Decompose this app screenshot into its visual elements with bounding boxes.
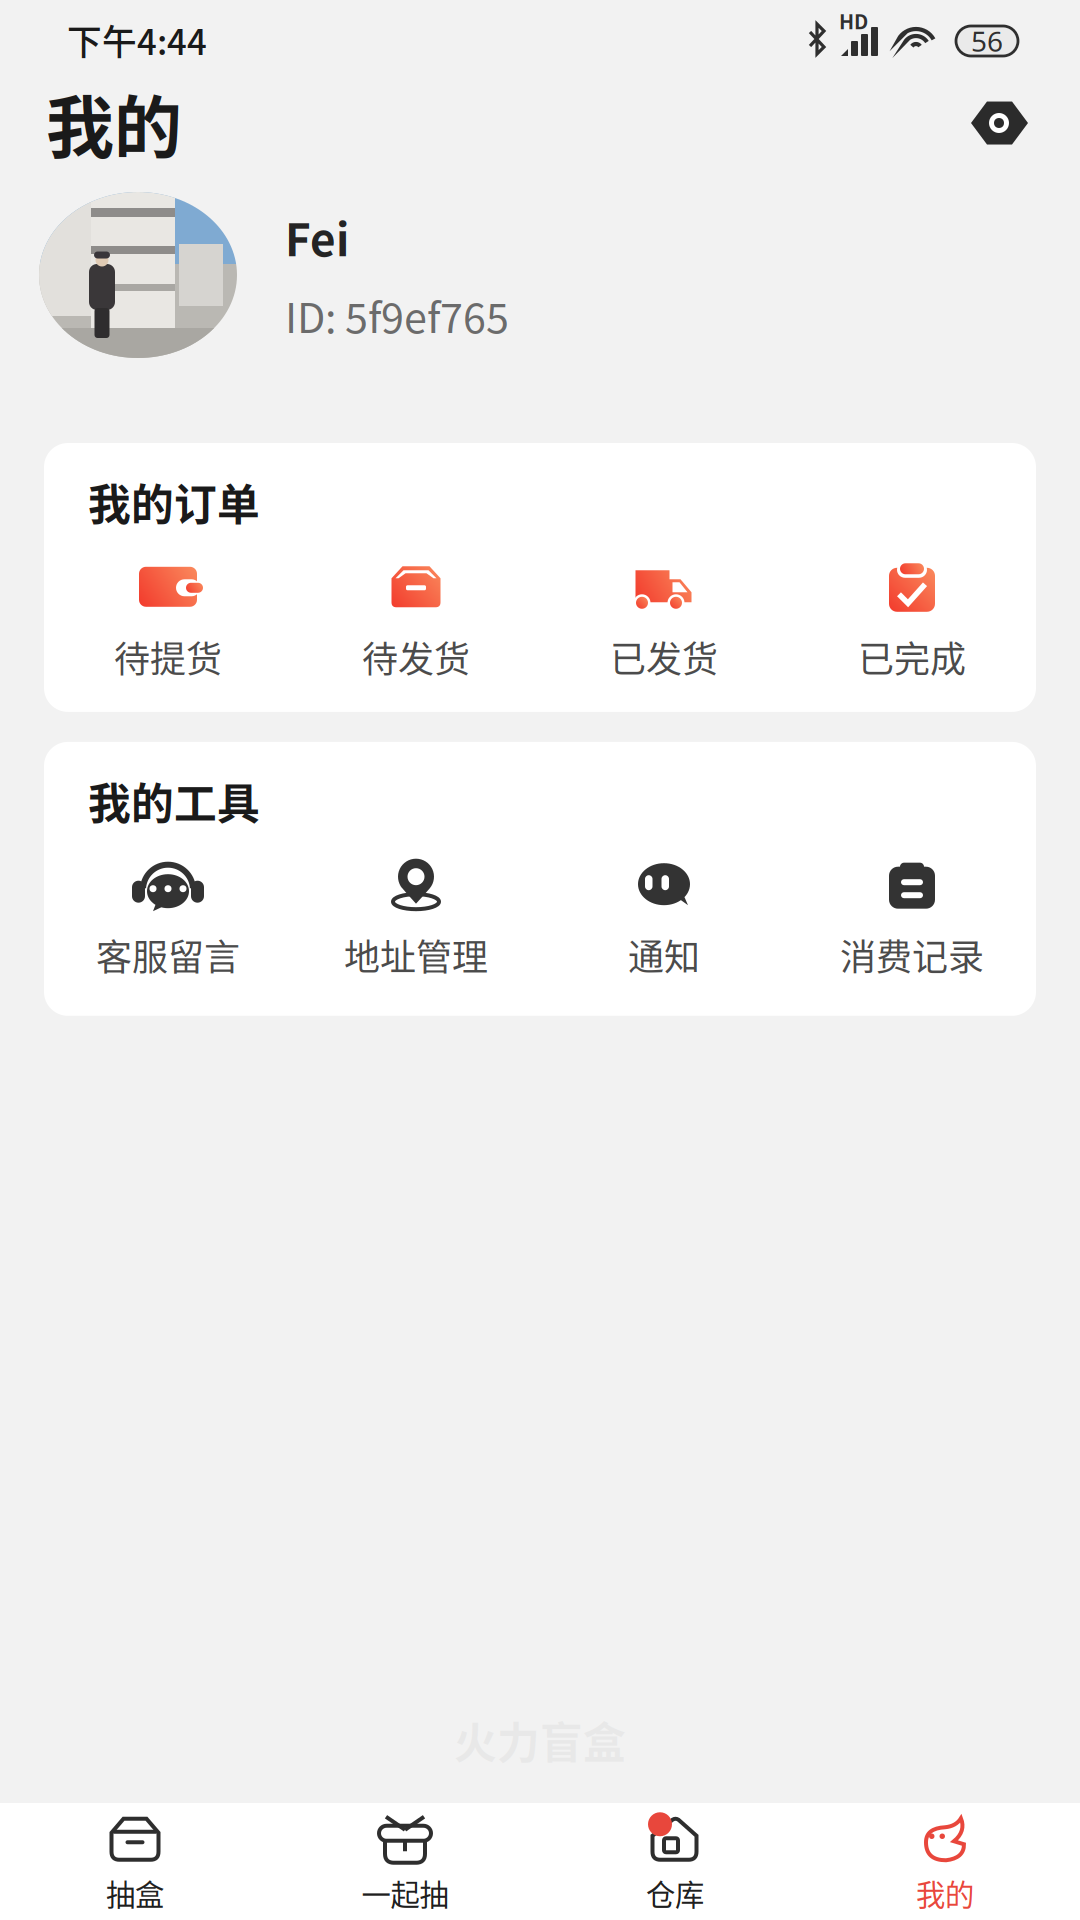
button[interactable]: 仓库 xyxy=(540,1791,810,1920)
staticText: 仓库 xyxy=(646,1872,704,1914)
button[interactable]: 地址管理 xyxy=(292,859,540,981)
button[interactable]: 消费记录 xyxy=(788,859,1036,981)
staticText: 已完成 xyxy=(858,631,966,683)
staticText: 火力盲盒 xyxy=(454,1709,626,1771)
staticText: ID: 5f9ef765 xyxy=(285,285,509,345)
staticText: HD xyxy=(839,6,868,35)
staticText: 通知 xyxy=(628,929,700,981)
button[interactable]: 通知 xyxy=(540,859,788,981)
button[interactable]: 待提货 xyxy=(44,561,292,683)
button[interactable]: 抽盒 xyxy=(0,1791,270,1920)
button[interactable]: 设置 xyxy=(961,92,1037,153)
staticText: 我的工具 xyxy=(88,770,260,832)
button[interactable]: Fei xyxy=(0,192,1080,358)
staticText: 客服留言 xyxy=(96,929,240,981)
staticText: 我的订单 xyxy=(88,471,260,533)
button[interactable]: 已发货 xyxy=(540,561,788,683)
staticText: Fei xyxy=(285,205,349,269)
staticText: 地址管理 xyxy=(344,929,488,981)
staticText: 待提货 xyxy=(114,631,222,683)
staticText: 已发货 xyxy=(610,631,718,683)
button[interactable]: 我的 xyxy=(810,1791,1080,1920)
staticText: 抽盒 xyxy=(106,1872,164,1914)
staticText: 下午4:44 xyxy=(67,15,207,65)
staticText: 消费记录 xyxy=(840,929,984,981)
staticText: 56 xyxy=(971,22,1003,60)
staticText: 一起抽 xyxy=(361,1872,448,1914)
button[interactable]: 客服留言 xyxy=(44,859,292,981)
button[interactable]: 已完成 xyxy=(788,561,1036,683)
button[interactable]: 一起抽 xyxy=(270,1791,540,1920)
staticText: 我的 xyxy=(46,74,182,172)
staticText: 待发货 xyxy=(362,631,470,683)
staticText: 我的 xyxy=(916,1872,974,1914)
button[interactable]: 待发货 xyxy=(292,561,540,683)
